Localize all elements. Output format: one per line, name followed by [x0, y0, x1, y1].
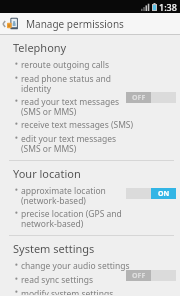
- button[interactable]: Navigate up: [0, 13, 22, 34]
- button[interactable]: change your audio settings: [0, 259, 180, 273]
- staticText: System settings: [13, 241, 95, 256]
- staticText: read sync settings: [21, 274, 94, 286]
- button[interactable]: modify system settings: [0, 287, 180, 296]
- staticText: precise location (GPS and network-based): [21, 208, 122, 229]
- staticText: OFF: [132, 271, 146, 281]
- staticText: Manage permissions: [26, 17, 124, 31]
- staticText: Telephony: [13, 40, 67, 55]
- staticText: approximate location (network-based): [21, 185, 106, 206]
- staticText: reroute outgoing calls: [21, 59, 109, 71]
- staticText: change your audio settings: [21, 260, 130, 272]
- staticText: receive text messages (SMS): [21, 119, 134, 131]
- button[interactable]: precise location (GPS and network-based): [0, 207, 180, 230]
- staticText: 1:38: [159, 1, 177, 13]
- staticText: edit your text messages (SMS or MMS): [21, 133, 117, 154]
- button[interactable]: receive text messages (SMS): [0, 118, 180, 132]
- button[interactable]: Permission disabled: [126, 92, 180, 103]
- staticText: Your location: [13, 166, 81, 181]
- button[interactable]: edit your text messages (SMS or MMS): [0, 132, 180, 155]
- button[interactable]: read phone status and identity: [0, 72, 180, 95]
- button[interactable]: approximate location (network-based): [0, 184, 180, 207]
- staticText: read your text messages (SMS or MMS): [21, 96, 120, 117]
- staticText: OFF: [132, 93, 146, 103]
- staticText: ON: [158, 189, 170, 199]
- button[interactable]: Permission disabled: [126, 270, 180, 281]
- staticText: read phone status and identity: [21, 73, 111, 94]
- button[interactable]: read sync settings: [0, 273, 180, 287]
- button[interactable]: reroute outgoing calls: [0, 58, 180, 72]
- button[interactable]: read your text messages (SMS or MMS): [0, 95, 180, 118]
- staticText: modify system settings: [21, 288, 114, 295]
- button[interactable]: Permission enabled: [126, 188, 180, 199]
